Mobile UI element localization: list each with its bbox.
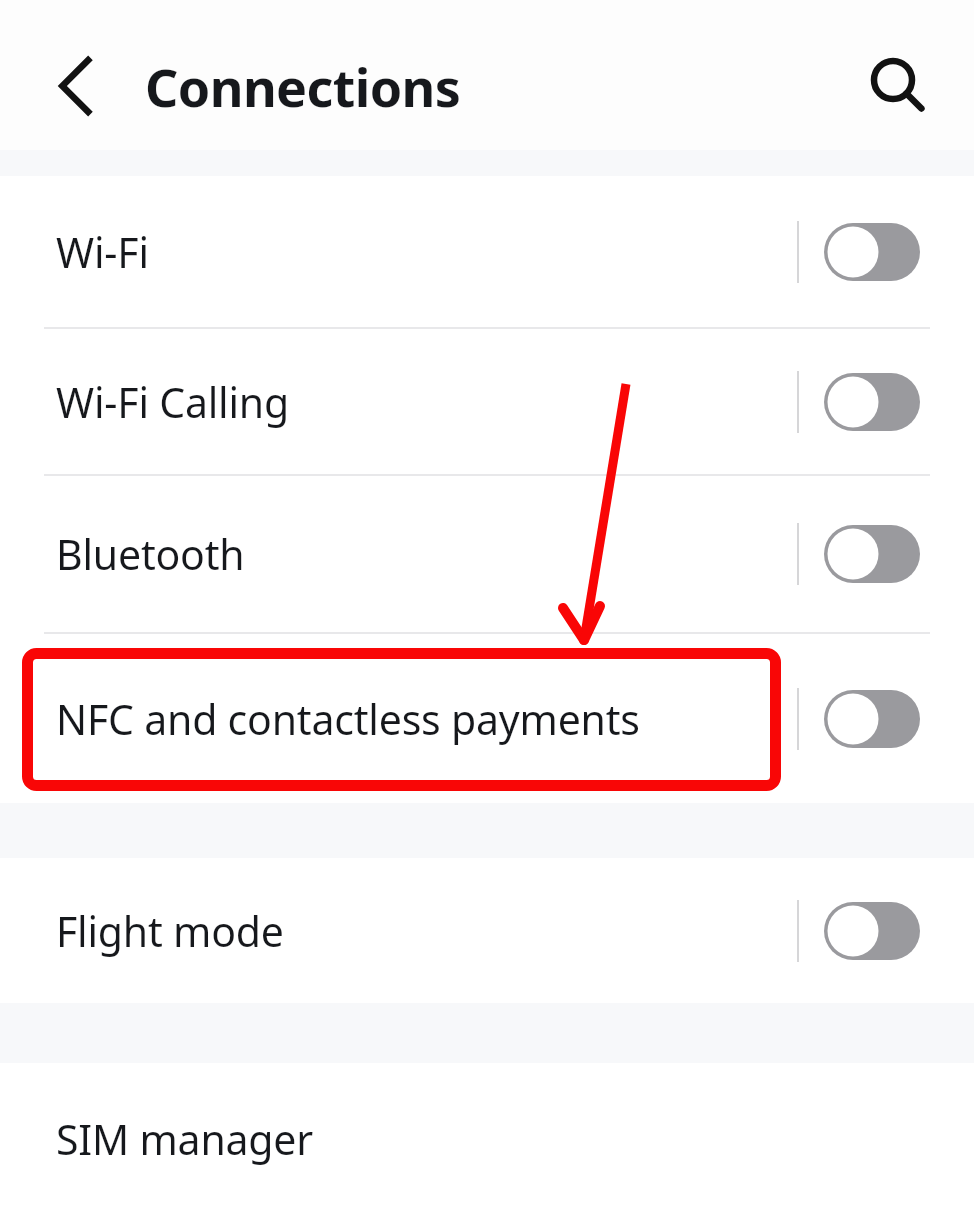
staticText: Flight mode [56,903,785,959]
button[interactable]: Flight mode toggle, off [824,902,920,960]
button[interactable]: Back [38,48,114,124]
button[interactable]: Search [855,42,931,118]
button[interactable]: Bluetooth [0,476,974,632]
staticText: SIM manager [56,1111,314,1167]
button[interactable]: Bluetooth toggle, off [824,525,920,583]
staticText: Wi-Fi [56,224,785,280]
staticText: Connections [145,51,461,122]
button[interactable]: Wi-Fi [0,176,974,327]
button[interactable]: Wi-Fi Calling toggle, off [824,373,920,431]
button[interactable]: SIM manager [0,1063,974,1214]
button[interactable]: Wi-Fi Calling [0,329,974,474]
staticText: Bluetooth [56,526,785,582]
button[interactable]: NFC and contactless payments [0,634,974,803]
button[interactable]: NFC and contactless payments toggle, off [824,690,920,748]
staticText: NFC and contactless payments [56,691,785,747]
button[interactable]: Wi-Fi toggle, off [824,223,920,281]
staticText: Wi-Fi Calling [56,374,785,430]
button[interactable]: Flight mode [0,858,974,1003]
